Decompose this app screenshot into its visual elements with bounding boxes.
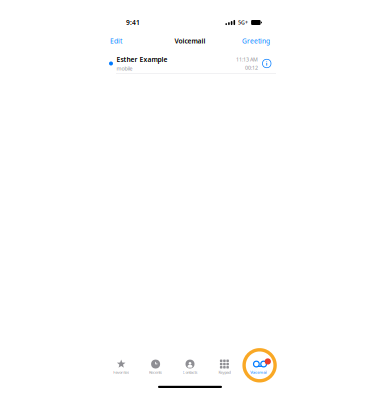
- staticText: 5G+: [238, 19, 248, 26]
- staticText: Contacts: [182, 369, 197, 375]
- staticText: 11:13 AM: [236, 56, 258, 63]
- button[interactable]: Keypad: [207, 352, 242, 376]
- staticText: Voicemail: [174, 37, 205, 45]
- button[interactable]: Favorites: [104, 352, 138, 376]
- staticText: 00:12: [245, 64, 258, 71]
- staticText: Esther Example: [116, 55, 167, 64]
- button[interactable]: Voicemail: [242, 352, 276, 376]
- staticText: 9:41: [126, 18, 140, 27]
- button[interactable]: Contacts: [173, 352, 207, 376]
- staticText: Edit: [110, 37, 122, 45]
- button[interactable]: Edit: [108, 35, 124, 47]
- staticText: Voicemail: [250, 369, 267, 375]
- staticText: Favorites: [113, 369, 129, 375]
- staticText: mobile: [116, 65, 132, 72]
- button[interactable]: Esther Example: [104, 54, 258, 73]
- staticText: Greeting: [242, 37, 270, 45]
- button[interactable]: Greeting: [240, 35, 272, 47]
- button[interactable]: Voicemail details: [261, 58, 272, 69]
- staticText: Recents: [149, 369, 162, 375]
- staticText: Keypad: [218, 369, 230, 375]
- button[interactable]: Recents: [138, 352, 173, 376]
